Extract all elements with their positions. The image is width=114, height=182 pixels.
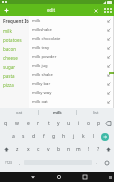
button[interactable]: list xyxy=(77,108,114,117)
staticText: sugar xyxy=(3,64,16,70)
button[interactable]: o xyxy=(84,118,93,129)
button[interactable]: Enter xyxy=(99,131,110,142)
staticText: milk tray xyxy=(32,45,107,51)
button[interactable]: milkshake xyxy=(29,25,114,34)
button[interactable]: Shift xyxy=(104,144,113,155)
button[interactable]: p xyxy=(94,118,103,129)
button[interactable]: g xyxy=(49,131,58,142)
button[interactable]: bacon xyxy=(3,44,29,53)
staticText: b xyxy=(57,146,61,153)
staticText: t xyxy=(48,120,50,127)
button[interactable]: pasta xyxy=(3,71,29,80)
button[interactable]: s xyxy=(19,131,28,142)
button[interactable]: Shift xyxy=(1,144,11,155)
other: Insert suggestion xyxy=(107,91,111,95)
button[interactable]: n xyxy=(64,144,73,155)
button[interactable]: milk powder xyxy=(29,52,114,61)
button[interactable]: , xyxy=(16,157,23,168)
button[interactable]: k xyxy=(79,131,88,142)
button[interactable]: milk jug xyxy=(29,61,114,70)
button[interactable]: f xyxy=(39,131,48,142)
button[interactable]: sugar xyxy=(3,62,29,71)
button[interactable]: edit xyxy=(36,6,66,14)
staticText: milk xyxy=(3,28,12,34)
button[interactable]: Add item xyxy=(2,6,11,15)
button[interactable]: a xyxy=(8,131,18,142)
button[interactable]: ?123 xyxy=(1,157,15,168)
button[interactable]: Back xyxy=(20,172,46,182)
button[interactable]: milky bar xyxy=(29,79,114,88)
button[interactable]: t xyxy=(44,118,53,129)
button[interactable]: milk xyxy=(29,16,114,25)
staticText: w xyxy=(15,120,19,127)
button[interactable]: milk shake xyxy=(29,70,114,79)
staticText: s xyxy=(22,133,25,140)
button[interactable]: milk xyxy=(39,108,76,117)
staticText: ? xyxy=(97,146,100,153)
staticText: edit xyxy=(47,7,56,13)
staticText: ?123 xyxy=(5,161,12,165)
button[interactable]: Emoji xyxy=(101,157,113,168)
button[interactable]: d xyxy=(29,131,38,142)
button[interactable]: i xyxy=(74,118,83,129)
staticText: y xyxy=(57,120,60,127)
button[interactable]: potatoes xyxy=(3,35,29,44)
button[interactable]: cheese xyxy=(3,53,29,62)
button[interactable]: y xyxy=(54,118,63,129)
button[interactable]: Clear xyxy=(91,6,100,15)
staticText: e xyxy=(27,120,30,127)
staticText: z xyxy=(16,146,19,153)
button[interactable]: r xyxy=(34,118,43,129)
other: Insert suggestion xyxy=(107,37,111,41)
button[interactable]: e xyxy=(23,118,33,129)
button[interactable]: b xyxy=(54,144,63,155)
staticText: g xyxy=(52,133,56,140)
button[interactable]: u xyxy=(64,118,73,129)
button[interactable]: Recents xyxy=(72,172,98,182)
other: Insert suggestion xyxy=(107,73,111,77)
staticText: a xyxy=(12,133,15,140)
other: Insert suggestion xyxy=(107,46,111,50)
button[interactable]: h xyxy=(59,131,68,142)
staticText: milk oat xyxy=(32,99,107,105)
button[interactable]: x xyxy=(23,144,33,155)
button[interactable]: More options xyxy=(104,8,112,13)
button[interactable]: milk xyxy=(3,26,29,35)
button[interactable]: j xyxy=(69,131,78,142)
button[interactable]: Home xyxy=(46,172,72,182)
staticText: m xyxy=(76,146,81,153)
button[interactable]: Backspace xyxy=(104,118,113,129)
button[interactable]: pizza xyxy=(3,80,29,89)
button[interactable]: milk oat xyxy=(29,97,114,106)
button[interactable]: milky way xyxy=(29,88,114,97)
staticText: milk chocolate xyxy=(32,36,107,42)
button[interactable]: milk chocolate xyxy=(29,34,114,43)
staticText: bacon xyxy=(3,46,16,52)
other: Insert suggestion xyxy=(107,19,111,23)
staticText: milk powder xyxy=(32,54,107,60)
staticText: q xyxy=(4,120,8,127)
button[interactable]: m xyxy=(74,144,83,155)
staticText: pasta xyxy=(3,73,15,79)
button[interactable]: ? xyxy=(94,144,103,155)
other: Insert suggestion xyxy=(107,100,111,104)
button[interactable]: l xyxy=(89,131,98,142)
staticText: f xyxy=(43,133,45,140)
other: Insert suggestion xyxy=(107,28,111,32)
button[interactable]: c xyxy=(34,144,43,155)
button[interactable]: w xyxy=(12,118,22,129)
staticText: ! xyxy=(88,146,90,153)
button[interactable]: oat xyxy=(0,108,38,117)
other: Insert suggestion xyxy=(107,64,111,68)
staticText: milky bar xyxy=(32,81,107,87)
button[interactable]: z xyxy=(12,144,22,155)
staticText: i xyxy=(78,120,80,127)
button[interactable]: v xyxy=(44,144,53,155)
button[interactable]: milk tray xyxy=(29,43,114,52)
staticText: r xyxy=(37,120,40,127)
button[interactable]: q xyxy=(1,118,11,129)
staticText: c xyxy=(37,146,40,153)
button[interactable]: ! xyxy=(84,144,93,155)
